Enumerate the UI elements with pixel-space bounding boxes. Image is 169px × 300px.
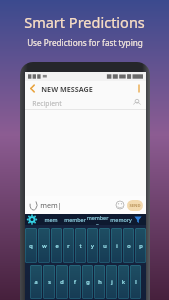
staticText: s: [48, 278, 51, 286]
button[interactable]: s: [43, 265, 55, 299]
staticText: e: [55, 242, 59, 250]
button[interactable]: e: [51, 228, 62, 263]
staticText: mem|: [40, 200, 62, 210]
staticText: o: [127, 242, 131, 250]
staticText: q: [29, 242, 33, 250]
staticText: NEW MESSAGE: [41, 84, 93, 94]
button[interactable]: p: [135, 228, 146, 263]
staticText: l: [135, 278, 137, 286]
staticText: mem: [44, 216, 58, 223]
staticText: f: [74, 278, 76, 286]
staticText: member: [64, 216, 86, 223]
staticText: j: [111, 278, 113, 286]
button[interactable]: member: [63, 214, 86, 225]
staticText: Smart Predictions: [24, 12, 145, 32]
staticText: g: [86, 278, 90, 286]
staticText: t: [79, 242, 82, 250]
button[interactable]: k: [118, 265, 129, 299]
button[interactable]: i: [111, 228, 122, 263]
button[interactable]: f: [69, 265, 81, 299]
staticText: a: [34, 278, 38, 286]
button[interactable]: g: [82, 265, 93, 299]
button[interactable]: Recipient: [25, 96, 146, 110]
staticText: d: [60, 278, 64, 286]
button[interactable]: u: [99, 228, 110, 263]
staticText: memory: [110, 216, 132, 223]
button[interactable]: j: [106, 265, 117, 299]
button[interactable]: h: [94, 265, 105, 299]
staticText: u: [103, 242, 107, 250]
staticText: h: [98, 278, 102, 286]
staticText: r: [67, 242, 70, 250]
button[interactable]: t: [75, 228, 86, 263]
button[interactable]: d: [56, 265, 68, 299]
staticText: Recipient: [32, 99, 62, 108]
button[interactable]: l: [130, 265, 141, 299]
staticText: y: [91, 242, 94, 250]
button[interactable]: memory: [109, 214, 132, 225]
button[interactable]: Send: [127, 200, 143, 211]
staticText: p: [139, 242, 143, 250]
staticText: i: [116, 242, 118, 250]
button[interactable]: mem: [39, 214, 63, 225]
staticText: k: [122, 278, 125, 286]
button[interactable]: y: [87, 228, 98, 263]
button[interactable]: o: [123, 228, 134, 263]
staticText: w: [42, 242, 47, 250]
button[interactable]: w: [38, 228, 50, 263]
staticText: SEND: [129, 203, 141, 209]
staticText: Use Predictions for fast typing: [27, 37, 143, 48]
button[interactable]: NEW MESSAGE: [25, 81, 146, 96]
button[interactable]: a: [30, 265, 42, 299]
button[interactable]: q: [25, 228, 37, 263]
button[interactable]: members: [86, 214, 109, 225]
staticText: members: [86, 214, 109, 225]
button[interactable]: r: [63, 228, 74, 263]
